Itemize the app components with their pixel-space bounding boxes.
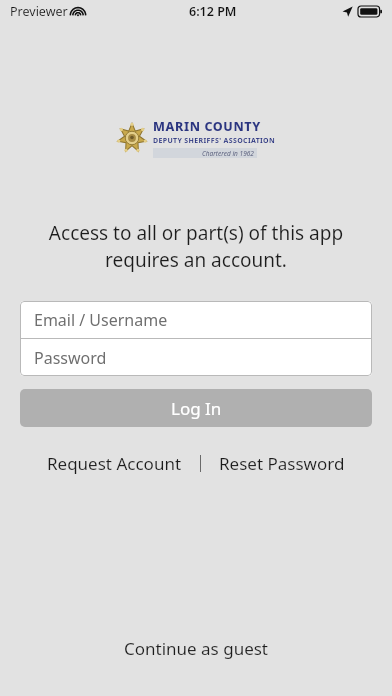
staticText: Request Account <box>47 452 182 475</box>
staticText: Previewer <box>10 3 68 20</box>
staticText: 6:12 PM <box>189 3 237 20</box>
staticText: Reset Password <box>219 452 345 475</box>
staticText: MARIN COUNTY <box>153 118 261 135</box>
button[interactable]: Request Account <box>41 448 188 479</box>
staticText: Password <box>34 347 107 369</box>
staticText: Log In <box>171 397 222 420</box>
button[interactable]: Password <box>20 339 372 376</box>
button[interactable]: Reset Password <box>213 448 351 479</box>
button[interactable]: Email / Username <box>20 301 372 338</box>
staticText: Access to all or part(s) of this app req… <box>24 220 368 273</box>
staticText: Email / Username <box>34 309 168 331</box>
button[interactable]: Continue as guest <box>0 627 392 670</box>
staticText: DEPUTY SHERIFFS' ASSOCIATION <box>153 136 276 146</box>
staticText: Chartered in 1962 <box>202 149 254 158</box>
staticText: Continue as guest <box>124 637 269 660</box>
button[interactable]: Log In <box>20 389 372 427</box>
